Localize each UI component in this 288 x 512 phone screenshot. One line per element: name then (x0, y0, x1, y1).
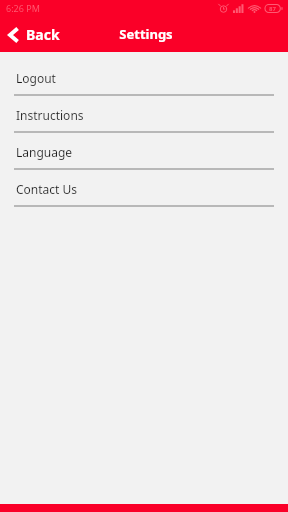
staticText: Language (16, 144, 73, 160)
other: Back (5, 26, 23, 44)
button[interactable]: Logout (0, 62, 288, 99)
staticText: 6:26 PM (6, 2, 40, 14)
button[interactable]: Language (0, 136, 288, 173)
staticText: Logout (16, 70, 56, 86)
staticText: Instructions (16, 107, 84, 123)
staticText: Settings (119, 25, 173, 43)
button[interactable]: Instructions (0, 99, 288, 136)
staticText: Back (26, 25, 60, 44)
button[interactable]: Contact Us (0, 173, 288, 210)
staticText: 87 (269, 5, 276, 13)
staticText: Contact Us (16, 181, 78, 197)
button[interactable]: Back (0, 21, 70, 48)
